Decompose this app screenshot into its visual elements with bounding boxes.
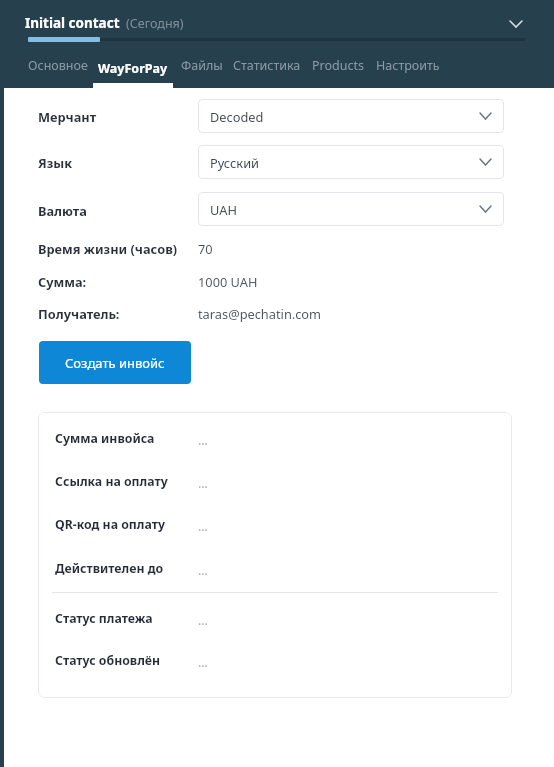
- button[interactable]: Файлы: [172, 54, 232, 88]
- button[interactable]: Настроить: [366, 54, 450, 88]
- button[interactable]: Decoded: [198, 99, 504, 133]
- button[interactable]: [93, 54, 173, 88]
- staticText: Основное: [28, 57, 88, 74]
- button[interactable]: UAH: [198, 192, 504, 226]
- staticText: Мерчант: [38, 108, 97, 125]
- staticText: (Сегодня): [126, 15, 184, 32]
- staticText: QR-код на оплату: [55, 516, 165, 533]
- staticText: Файлы: [181, 57, 223, 74]
- button[interactable]: Статус обновлён: [45, 645, 505, 675]
- staticText: Decoded: [210, 108, 264, 125]
- staticText: ...: [198, 612, 208, 629]
- staticText: 70: [198, 240, 213, 257]
- button[interactable]: Статус платежа: [45, 603, 505, 633]
- staticText: Русский: [210, 154, 260, 171]
- button[interactable]: Products: [303, 54, 373, 88]
- button[interactable]: WayForPay: [93, 54, 173, 83]
- staticText: Время жизни (часов): [38, 240, 178, 257]
- button[interactable]: Действителен до: [45, 553, 505, 583]
- button[interactable]: Сумма инвойса: [45, 423, 505, 453]
- button[interactable]: Основное: [20, 54, 95, 88]
- staticText: Статистика: [233, 57, 301, 74]
- button[interactable]: Статистика: [226, 54, 308, 88]
- staticText: Ссылка на оплату: [55, 473, 168, 490]
- staticText: ...: [198, 432, 208, 449]
- staticText: Валюта: [38, 202, 87, 219]
- button[interactable]: Initial contact: [25, 11, 184, 35]
- staticText: ...: [198, 518, 208, 535]
- staticText: ...: [198, 475, 208, 492]
- staticText: Получатель:: [38, 305, 120, 322]
- staticText: Products: [312, 57, 364, 74]
- staticText: Сумма инвойса: [55, 430, 155, 447]
- staticText: Настроить: [376, 57, 440, 74]
- staticText: 1000 UAH: [198, 273, 258, 290]
- button[interactable]: Создать инвойс: [39, 341, 191, 384]
- staticText: Язык: [38, 154, 73, 171]
- staticText: taras@pechatin.com: [198, 305, 322, 322]
- staticText: ...: [198, 654, 208, 671]
- staticText: WayForPay: [98, 60, 168, 77]
- button[interactable]: QR-код на оплату: [45, 509, 505, 539]
- staticText: Статус платежа: [55, 610, 153, 627]
- staticText: ...: [198, 562, 208, 579]
- staticText: Сумма:: [38, 273, 87, 290]
- button[interactable]: Ссылка на оплату: [45, 466, 505, 496]
- staticText: Initial contact: [25, 14, 120, 32]
- staticText: UAH: [210, 201, 237, 218]
- staticText: Действителен до: [55, 560, 164, 577]
- staticText: Статус обновлён: [55, 652, 161, 669]
- staticText: Создать инвойс: [65, 354, 165, 372]
- button[interactable]: Русский: [198, 145, 504, 179]
- button[interactable]: Свернуть: [500, 8, 532, 40]
